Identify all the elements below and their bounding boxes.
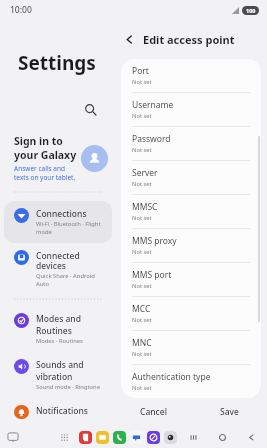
button[interactable]: Port	[121, 59, 261, 92]
other: Back	[124, 34, 135, 45]
staticText: Authentication type	[132, 371, 211, 383]
button[interactable]: Home	[217, 432, 228, 443]
staticText: MMS port	[132, 269, 172, 281]
staticText: MNC	[132, 337, 152, 349]
staticText: MMSC	[132, 201, 158, 213]
staticText: Connected devices	[36, 250, 108, 272]
button[interactable]: Camera	[164, 431, 177, 444]
staticText: Wi-Fi · Bluetooth · Flight	[36, 220, 101, 228]
button[interactable]: MMS proxy	[121, 229, 261, 262]
staticText: Sign in to	[14, 134, 63, 148]
button[interactable]: Password	[121, 127, 261, 160]
button[interactable]: Internet	[147, 431, 160, 444]
staticText: Not set	[132, 180, 152, 188]
staticText: Not set	[132, 146, 152, 154]
button[interactable]: Search	[0, 98, 116, 120]
button[interactable]: Messages	[130, 431, 143, 444]
staticText: 100	[246, 7, 256, 14]
button[interactable]: Modes and	[4, 306, 112, 352]
staticText: vibration	[36, 371, 73, 383]
staticText: Not set	[132, 316, 152, 324]
staticText: Sound mode · Ringtone	[36, 383, 100, 391]
button[interactable]: Back	[116, 26, 267, 52]
staticText: Not set	[132, 78, 152, 86]
staticText: Cancel	[140, 406, 167, 418]
staticText: Username	[132, 99, 174, 111]
button[interactable]: Recents panel	[7, 431, 19, 443]
staticText: MCC	[132, 303, 151, 315]
button[interactable]: Notifications	[4, 398, 112, 426]
button[interactable]: Authentication type	[121, 365, 261, 398]
button[interactable]: Sign in to	[14, 134, 108, 182]
staticText: Modes and	[36, 313, 81, 325]
staticText: Not set	[132, 384, 152, 392]
staticText: Answer calls and	[14, 164, 66, 173]
button[interactable]: MCC	[121, 297, 261, 330]
staticText: Server	[132, 167, 158, 179]
button[interactable]: Cancel	[116, 398, 191, 426]
staticText: Not set	[132, 112, 152, 120]
button[interactable]: Samsung Notes	[79, 431, 92, 444]
staticText: Modes · Routines	[36, 337, 83, 345]
button[interactable]: Username	[121, 93, 261, 126]
button[interactable]: Files	[96, 431, 109, 444]
staticText: texts on your tablet.	[14, 173, 76, 182]
button[interactable]: Apps	[59, 432, 70, 443]
staticText: your Galaxy	[14, 148, 77, 162]
staticText: Not set	[132, 214, 152, 222]
button[interactable]: Connections	[4, 201, 112, 243]
button[interactable]: Recents	[188, 432, 199, 443]
staticText: Settings	[18, 50, 96, 76]
staticText: Port	[132, 65, 149, 77]
button[interactable]: Server	[121, 161, 261, 194]
staticText: Sounds and	[36, 359, 84, 371]
staticText: mode	[36, 228, 52, 236]
staticText: MMS proxy	[132, 235, 177, 247]
staticText: Save	[220, 406, 239, 418]
staticText: Password	[132, 133, 171, 145]
button[interactable]: Sounds and	[4, 352, 112, 398]
staticText: Quick Share · Android	[36, 272, 95, 280]
staticText: Not set	[132, 282, 152, 290]
button[interactable]: Phone	[113, 431, 126, 444]
staticText: Not set	[132, 248, 152, 256]
button[interactable]: Back	[246, 432, 257, 443]
button[interactable]: MMS port	[121, 263, 261, 296]
button[interactable]: Save	[191, 398, 267, 426]
staticText: Notifications	[36, 405, 88, 417]
staticText: Connections	[36, 208, 87, 220]
staticText: Edit access point	[143, 32, 235, 47]
button[interactable]: MNC	[121, 331, 261, 364]
staticText: Routines	[36, 325, 72, 337]
staticText: Auto	[36, 280, 49, 288]
staticText: Not set	[132, 350, 152, 358]
staticText: 10:00	[10, 4, 32, 16]
button[interactable]: Connected devices	[4, 243, 112, 295]
button[interactable]: MMSC	[121, 195, 261, 228]
